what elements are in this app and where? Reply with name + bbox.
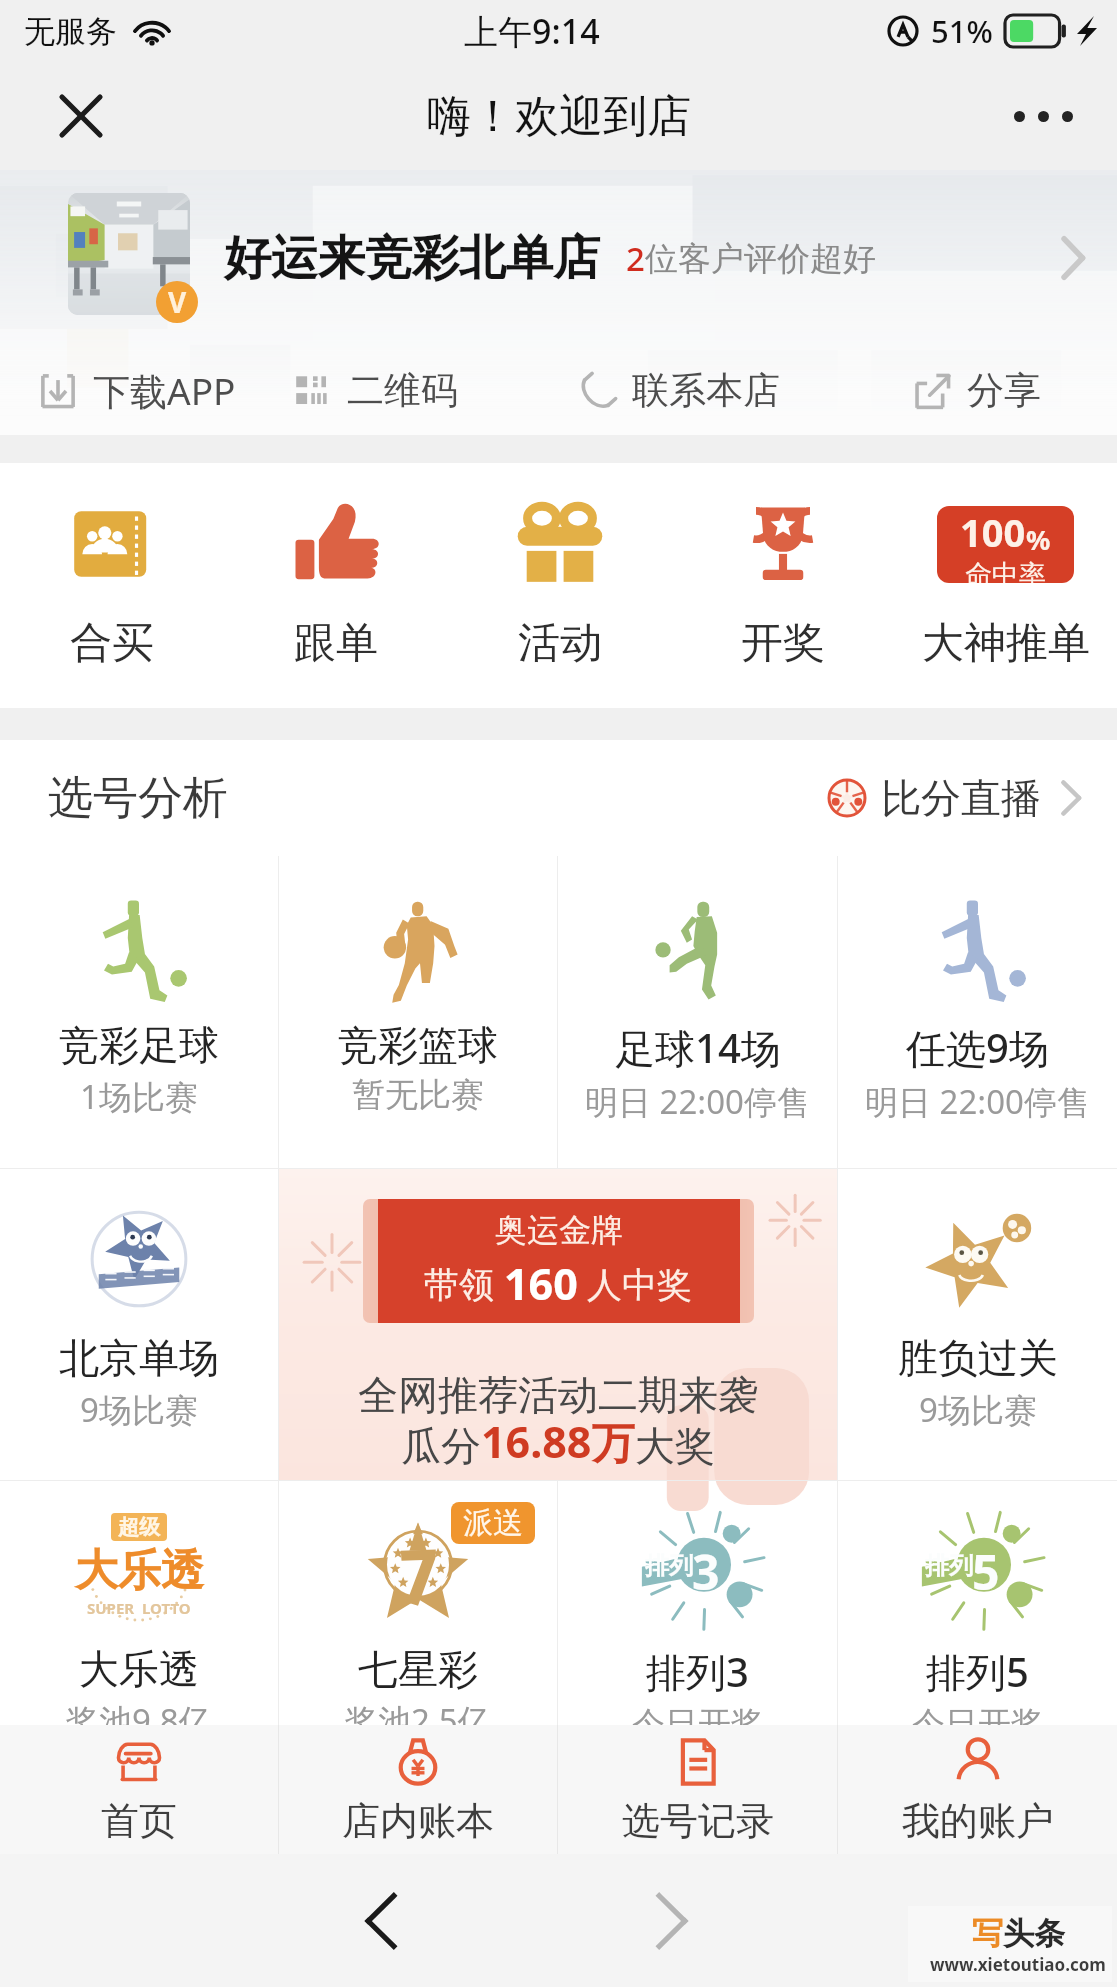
button[interactable]: 活动 (448, 463, 671, 708)
staticText: 3 (692, 1539, 720, 1604)
staticText: 命中率 (965, 558, 1046, 583)
staticText: 大神推单 (922, 617, 1090, 670)
staticText: 下载APP (93, 365, 236, 416)
staticText: 无服务 (24, 12, 117, 51)
button[interactable]: 选号记录 (558, 1725, 837, 1854)
staticText: 9场比赛 (919, 1387, 1037, 1432)
staticText: 奥运金牌 (495, 1210, 623, 1250)
button[interactable]: 奥运金牌 (279, 1169, 837, 1480)
staticText: 带领 (424, 1260, 504, 1308)
staticText: 5 (972, 1539, 1000, 1604)
staticText: 派送 (463, 1504, 523, 1542)
button[interactable]: 比分直播 (827, 773, 1083, 823)
button[interactable]: 跟单 (224, 463, 448, 708)
staticText: 100 (960, 506, 1026, 558)
button[interactable]: 更多 (995, 81, 1091, 151)
staticText: 明日 22:00停售 (865, 1079, 1090, 1124)
staticText: 奖池9.8亿 (66, 1698, 212, 1725)
staticText: 选号分析 (48, 770, 228, 827)
button[interactable]: 排列 (838, 1481, 1117, 1725)
staticText: 今日开奖 (912, 1703, 1044, 1725)
staticText: 16.88万 (481, 1412, 635, 1471)
button[interactable]: 北京单场 (0, 1169, 278, 1480)
button[interactable]: 胜负过关 (838, 1169, 1117, 1480)
staticText: 大乐透 (79, 1644, 199, 1694)
staticText: 联系本店 (632, 367, 780, 414)
staticText: 胜负过关 (898, 1333, 1058, 1383)
staticText: 写 (972, 1914, 1003, 1953)
staticText: 奖池2.5亿 (345, 1698, 491, 1725)
button[interactable]: V (0, 170, 1117, 435)
button[interactable]: 首页 (0, 1725, 278, 1854)
button[interactable]: 分享 (910, 346, 1043, 435)
button[interactable]: 返回 (333, 1873, 429, 1969)
staticText: SUPER LOTTO (87, 1598, 191, 1618)
staticText: 七星彩 (358, 1644, 478, 1694)
staticText: 竞彩篮球 (338, 1020, 498, 1070)
staticText: 首页 (101, 1797, 177, 1845)
button[interactable]: 任选9场 (838, 856, 1117, 1168)
staticText: 头条 (1003, 1914, 1065, 1953)
button[interactable]: 超级 (0, 1481, 278, 1725)
staticText: 1场比赛 (80, 1074, 198, 1119)
button[interactable]: 合买 (0, 463, 224, 708)
staticText: 排列3 (646, 1644, 749, 1699)
staticText: 瓜分 (401, 1421, 481, 1471)
button[interactable]: 关闭 (36, 71, 126, 161)
button[interactable]: 竞彩足球 (0, 856, 278, 1168)
staticText: 比分直播 (881, 773, 1041, 823)
staticText: V (168, 283, 187, 321)
staticText: 2 (626, 236, 645, 281)
staticText: 任选9场 (906, 1020, 1049, 1075)
staticText: % (1026, 521, 1051, 558)
button[interactable]: 二维码 (290, 346, 460, 435)
staticText: 竞彩足球 (59, 1020, 219, 1070)
button[interactable]: 我的账户 (838, 1725, 1117, 1854)
staticText: 选号记录 (622, 1797, 774, 1845)
staticText: 大乐透 (75, 1544, 204, 1598)
staticText: www.xietoutiao.com (930, 1953, 1106, 1976)
button[interactable]: 下载APP (35, 346, 238, 435)
staticText: 大奖 (635, 1421, 715, 1471)
staticText: 开奖 (741, 617, 825, 670)
button[interactable]: 店内账本 (279, 1725, 557, 1854)
staticText: 分享 (967, 367, 1041, 414)
staticText: 人中奖 (578, 1260, 693, 1308)
button[interactable]: 开奖 (671, 463, 894, 708)
staticText: 嗨！欢迎到店 (427, 89, 691, 144)
staticText: 超级 (118, 1514, 160, 1540)
staticText: 位客户评价超好 (645, 238, 876, 280)
staticText: 我的账户 (902, 1797, 1054, 1845)
button[interactable]: 排列 (558, 1481, 837, 1725)
staticText: 160 (504, 1254, 578, 1313)
staticText: 排列 (925, 1551, 973, 1581)
button[interactable]: 100 (894, 463, 1117, 708)
staticText: 51% (931, 10, 993, 52)
staticText: 今日开奖 (632, 1703, 764, 1725)
staticText: 暂无比赛 (352, 1074, 484, 1116)
staticText: 全网推荐活动二期来袭 (358, 1370, 758, 1420)
staticText: 9场比赛 (80, 1387, 198, 1432)
staticText: 跟单 (294, 617, 378, 670)
staticText: 二维码 (347, 367, 458, 414)
staticText: 上午9:14 (464, 8, 600, 54)
staticText: 北京单场 (59, 1333, 219, 1383)
staticText: 足球14场 (615, 1020, 781, 1075)
staticText: 排列 (645, 1551, 693, 1581)
staticText: 好运来竞彩北单店 (224, 229, 600, 288)
button[interactable]: 竞彩篮球 (279, 856, 557, 1168)
staticText: 店内账本 (342, 1797, 494, 1845)
button[interactable]: 联系本店 (575, 346, 782, 435)
button[interactable]: 足球14场 (558, 856, 837, 1168)
staticText: 排列5 (926, 1644, 1029, 1699)
staticText: 明日 22:00停售 (585, 1079, 810, 1124)
button[interactable]: 七星彩 (279, 1481, 557, 1725)
button[interactable]: 前进 (624, 1873, 720, 1969)
staticText: 活动 (518, 617, 602, 670)
staticText: 合买 (70, 617, 154, 670)
